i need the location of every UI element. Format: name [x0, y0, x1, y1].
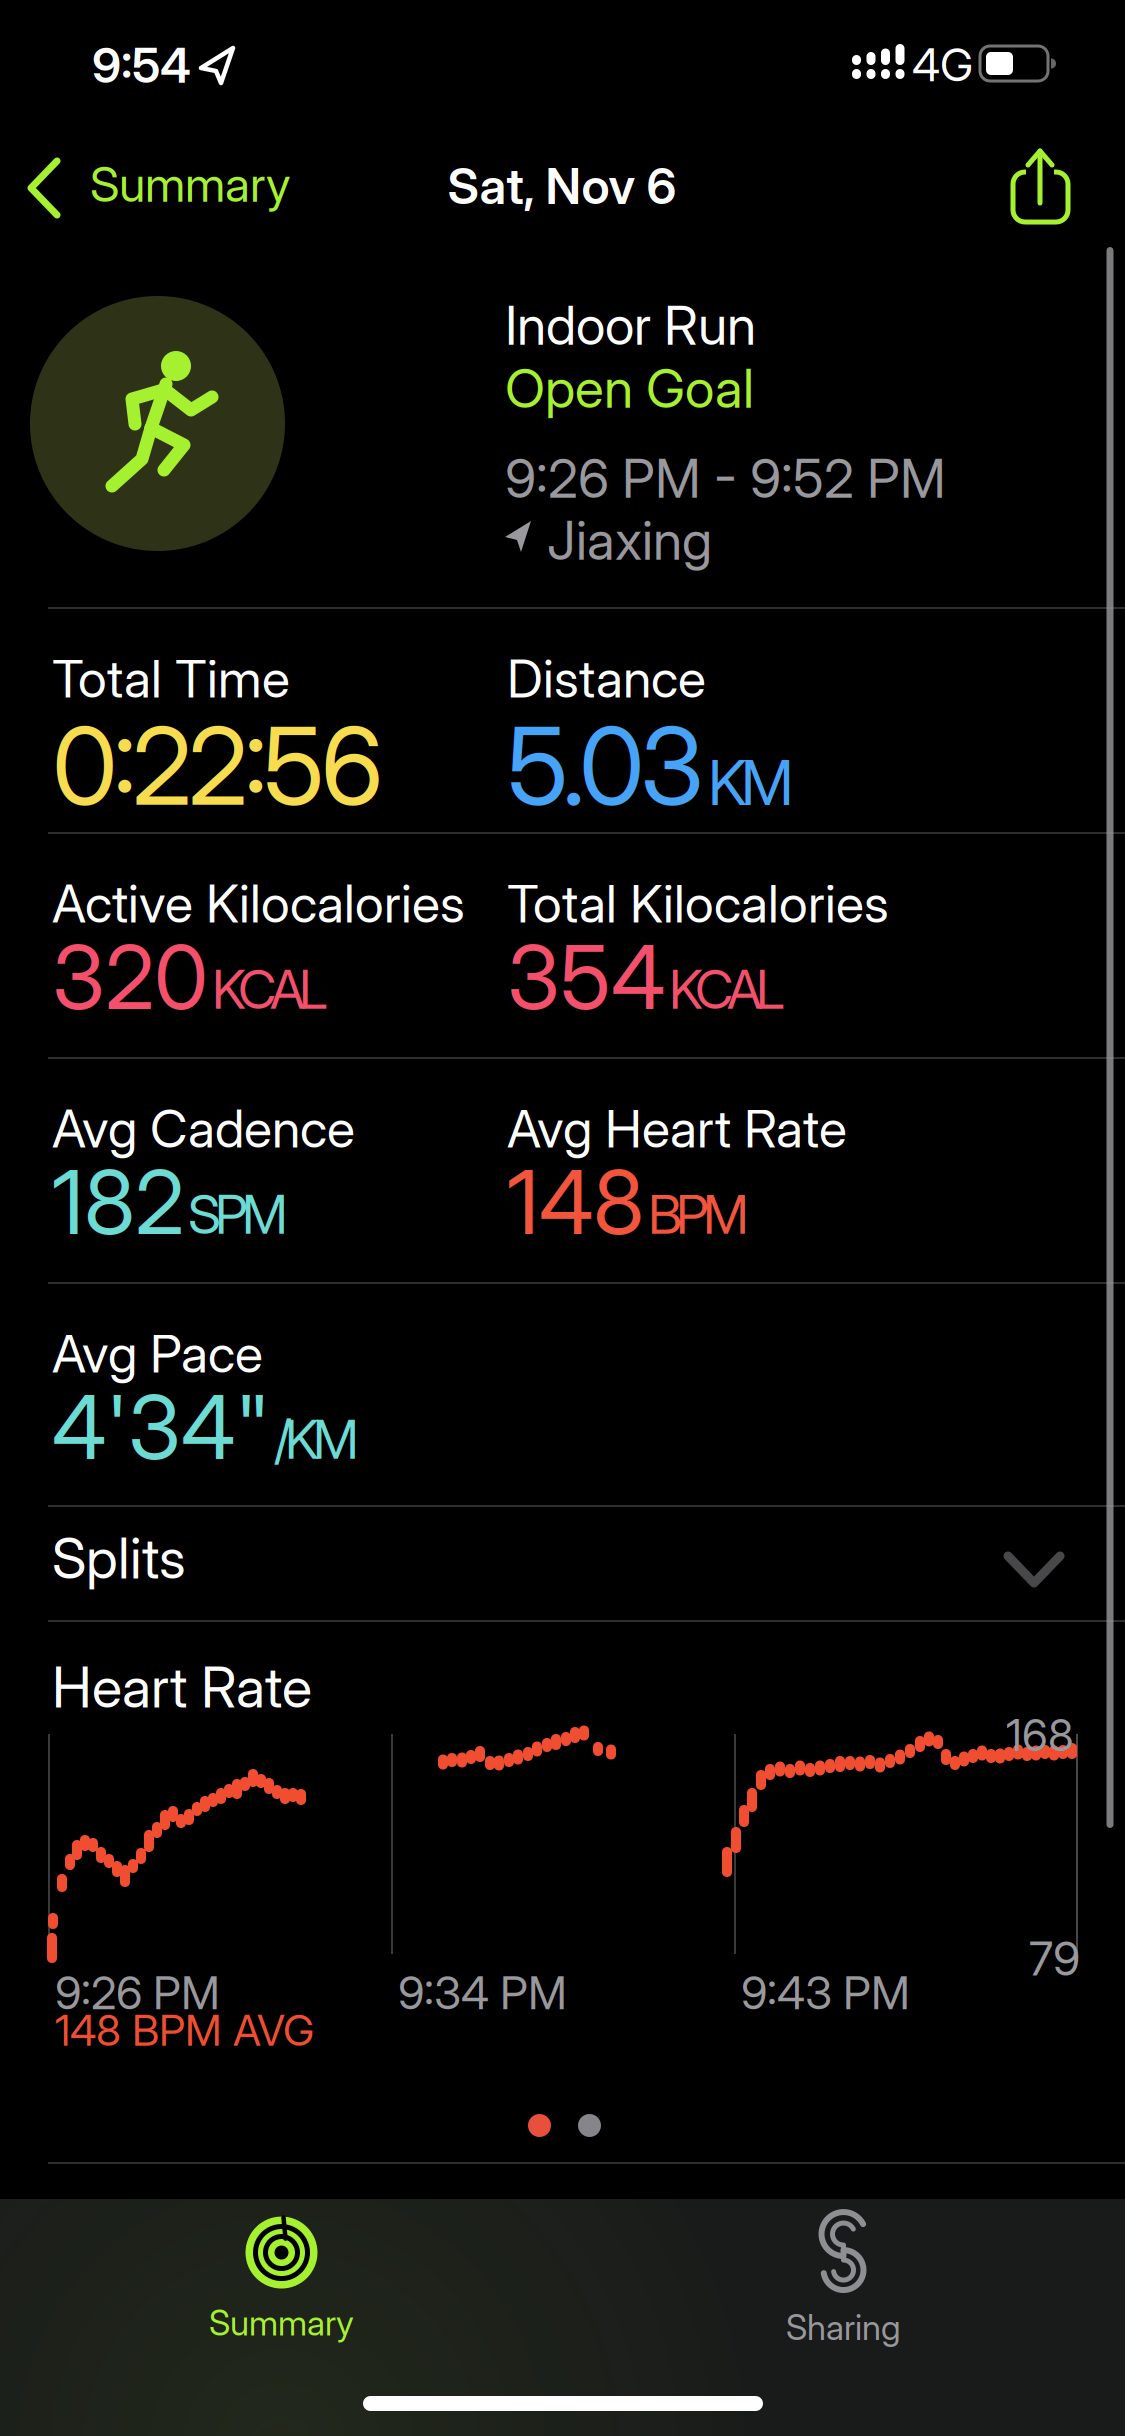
staticText: Distance: [507, 648, 706, 709]
button[interactable]: Summary: [209, 2217, 354, 2343]
staticText: Sat, Nov 6: [447, 157, 676, 215]
staticText: KCAL: [669, 958, 785, 1021]
staticText: 4'34": [52, 1375, 270, 1479]
staticText: 148: [507, 1150, 644, 1254]
staticText: BPM: [648, 1183, 749, 1246]
staticText: 182: [52, 1150, 184, 1254]
staticText: 9:26 PM - 9:52 PM: [505, 447, 946, 510]
staticText: 168: [1006, 1709, 1074, 1761]
staticText: Splits: [52, 1525, 186, 1591]
button[interactable]: Summary: [0, 150, 330, 230]
button[interactable]: Splits: [0, 1507, 1125, 1620]
staticText: 9:26 PM: [55, 1966, 220, 2019]
staticText: Avg Pace: [52, 1323, 263, 1384]
staticText: 9:54: [92, 37, 191, 94]
button[interactable]: Share: [995, 140, 1085, 230]
staticText: 148 BPM AVG: [55, 2005, 314, 2055]
staticText: 354: [507, 925, 665, 1029]
staticText: Avg Heart Rate: [507, 1098, 847, 1159]
staticText: 320: [52, 925, 208, 1029]
staticText: SPM: [188, 1183, 288, 1246]
staticText: Heart Rate: [52, 1654, 312, 1720]
staticText: Total Kilocalories: [507, 873, 889, 934]
staticText: Total Time: [52, 648, 290, 709]
staticText: Jiaxing: [547, 509, 712, 572]
staticText: 9:34 PM: [398, 1966, 567, 2019]
staticText: 5.03: [507, 703, 704, 829]
staticText: Summary: [209, 2303, 354, 2343]
button[interactable]: Sharing: [786, 2212, 901, 2348]
staticText: 79: [1029, 1931, 1080, 1986]
staticText: Avg Cadence: [52, 1098, 355, 1159]
staticText: Indoor Run: [505, 294, 756, 357]
staticText: Summary: [90, 156, 291, 213]
staticText: 4G: [912, 38, 973, 91]
staticText: 0:22:56: [52, 703, 383, 829]
staticText: Active Kilocalories: [52, 873, 465, 934]
staticText: KM: [708, 746, 794, 819]
staticText: KCAL: [212, 958, 328, 1021]
staticText: /KM: [274, 1408, 359, 1471]
staticText: 9:43 PM: [741, 1966, 910, 2019]
staticText: Sharing: [786, 2307, 901, 2348]
staticText: Open Goal: [505, 357, 754, 420]
